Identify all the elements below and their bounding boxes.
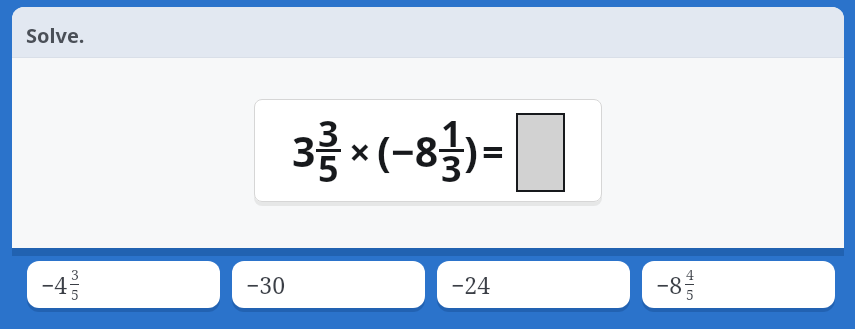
staticText: 5: [318, 144, 339, 193]
staticText: ): [464, 123, 478, 179]
staticText: (−8: [377, 123, 439, 179]
button[interactable]: Solve.: [12, 7, 844, 57]
button[interactable]: −4: [27, 261, 220, 308]
staticText: −4: [41, 269, 68, 300]
staticText: 3: [441, 144, 462, 193]
button[interactable]: [516, 113, 565, 192]
staticText: −30: [246, 269, 286, 300]
staticText: −24: [451, 269, 491, 300]
staticText: 3: [292, 123, 316, 179]
button[interactable]: −30: [232, 261, 425, 308]
staticText: Solve.: [26, 22, 85, 49]
staticText: 3: [318, 109, 339, 158]
button[interactable]: −8: [642, 261, 835, 308]
staticText: 5: [686, 285, 694, 304]
button[interactable]: −24: [437, 261, 630, 308]
staticText: ×: [349, 125, 371, 177]
staticText: −8: [656, 269, 683, 300]
staticText: 1: [441, 109, 462, 158]
staticText: 4: [686, 265, 694, 284]
staticText: =: [482, 125, 504, 177]
staticText: 5: [71, 285, 79, 304]
staticText: 3: [71, 265, 79, 284]
